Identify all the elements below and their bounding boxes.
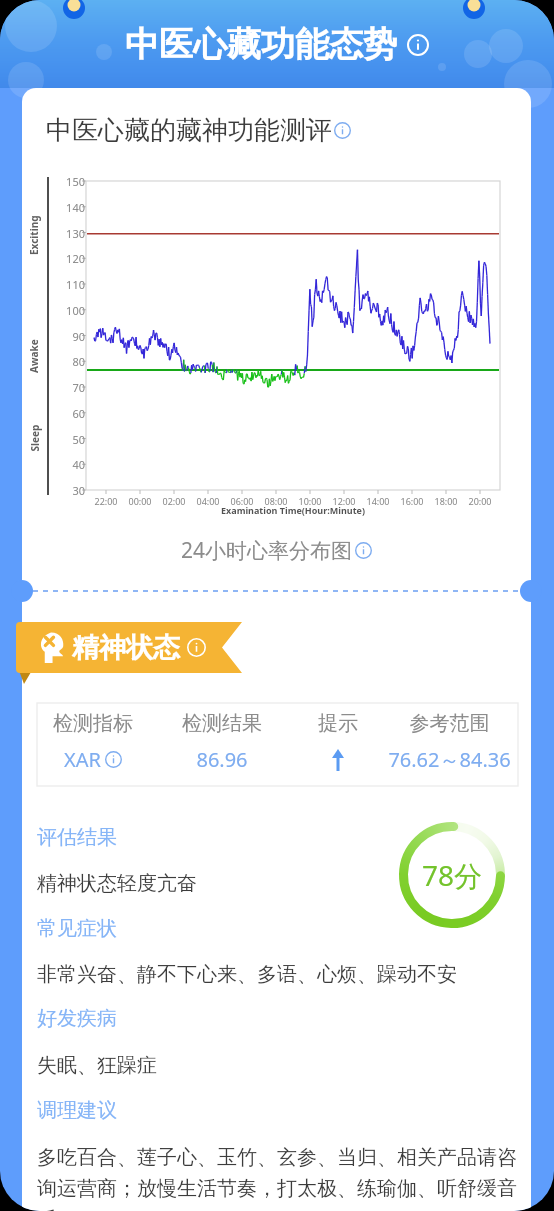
staticText: 常见症状 — [37, 916, 117, 941]
staticText: 40 — [50, 457, 85, 472]
staticText: 130 — [50, 226, 85, 241]
staticText: 70 — [50, 380, 85, 395]
staticText: XAR — [64, 746, 101, 773]
staticText: 00:00 — [120, 495, 160, 507]
staticText: 10:00 — [290, 495, 330, 507]
staticText: 16:00 — [392, 495, 432, 507]
staticText: 中医心藏的藏神功能测评 — [46, 114, 332, 147]
staticText: 76.62～84.36 — [381, 746, 518, 773]
staticText: 06:00 — [222, 495, 262, 507]
staticText: 02:00 — [154, 495, 194, 507]
staticText: 精神状态 — [72, 631, 180, 665]
staticText: 精神状态轻度亢奋 — [37, 871, 197, 896]
staticText: 18:00 — [426, 495, 466, 507]
staticText: 22:00 — [86, 495, 126, 507]
staticText: 86.96 — [149, 746, 295, 773]
staticText: 失眠、狂躁症 — [37, 1053, 157, 1078]
staticText: 检测结果 — [149, 711, 295, 736]
staticText: Examination Time(Hour:Minute) — [221, 504, 365, 516]
staticText: 评估结果 — [37, 825, 117, 850]
staticText: 提示 — [295, 711, 381, 736]
staticText: 50 — [50, 432, 85, 447]
staticText: Awake — [27, 339, 41, 373]
staticText: 120 — [50, 251, 85, 266]
staticText: 20:00 — [460, 495, 500, 507]
staticText: 90 — [50, 329, 85, 344]
staticText: 非常兴奋、静不下心来、多语、心烦、躁动不安 — [37, 962, 457, 987]
staticText: 14:00 — [358, 495, 398, 507]
staticText: 参考范围 — [381, 711, 518, 736]
staticText: 100 — [50, 303, 85, 318]
button[interactable]: 精神状态 — [16, 622, 242, 673]
staticText: 78分 — [422, 856, 483, 894]
staticText: 150 — [50, 174, 85, 189]
staticText: 140 — [50, 200, 85, 215]
staticText: 60 — [50, 406, 85, 421]
staticText: 04:00 — [188, 495, 228, 507]
staticText: 好发疾病 — [37, 1006, 117, 1031]
staticText: 30 — [50, 483, 85, 498]
staticText: 110 — [50, 277, 85, 292]
staticText: 检测指标 — [37, 711, 149, 736]
staticText: 中医心藏功能态势 — [125, 23, 397, 66]
staticText: 12:00 — [324, 495, 364, 507]
staticText: 调理建议 — [37, 1098, 117, 1123]
staticText: Sleep — [27, 424, 41, 451]
staticText: Exciting — [27, 215, 41, 255]
staticText: 80 — [50, 354, 85, 369]
staticText: 08:00 — [256, 495, 296, 507]
staticText: 24小时心率分布图 — [181, 536, 353, 565]
staticText: 多吃百合、莲子心、玉竹、玄参、当归、相关产品请咨询运营商；放慢生活节奏，打太极、… — [37, 1145, 518, 1211]
